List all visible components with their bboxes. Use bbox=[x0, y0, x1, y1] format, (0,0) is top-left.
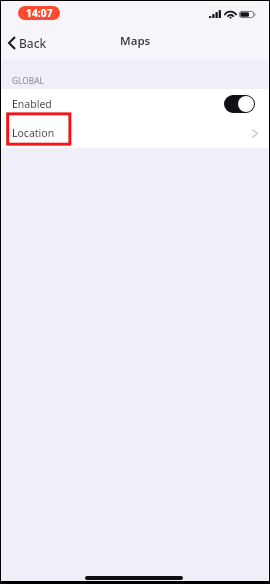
staticText: GLOBAL bbox=[12, 75, 44, 86]
staticText: 14:07 bbox=[26, 6, 53, 20]
staticText: Enabled bbox=[12, 97, 52, 111]
button[interactable]: Back bbox=[1, 28, 55, 55]
staticText: Location bbox=[12, 126, 55, 140]
button[interactable]: Enabled toggle bbox=[224, 95, 255, 113]
staticText: Maps bbox=[120, 33, 151, 49]
button[interactable]: Location bbox=[1, 118, 269, 148]
staticText: Back bbox=[19, 35, 47, 51]
other: Back bbox=[8, 36, 16, 50]
button[interactable]: Enabled bbox=[1, 89, 269, 118]
